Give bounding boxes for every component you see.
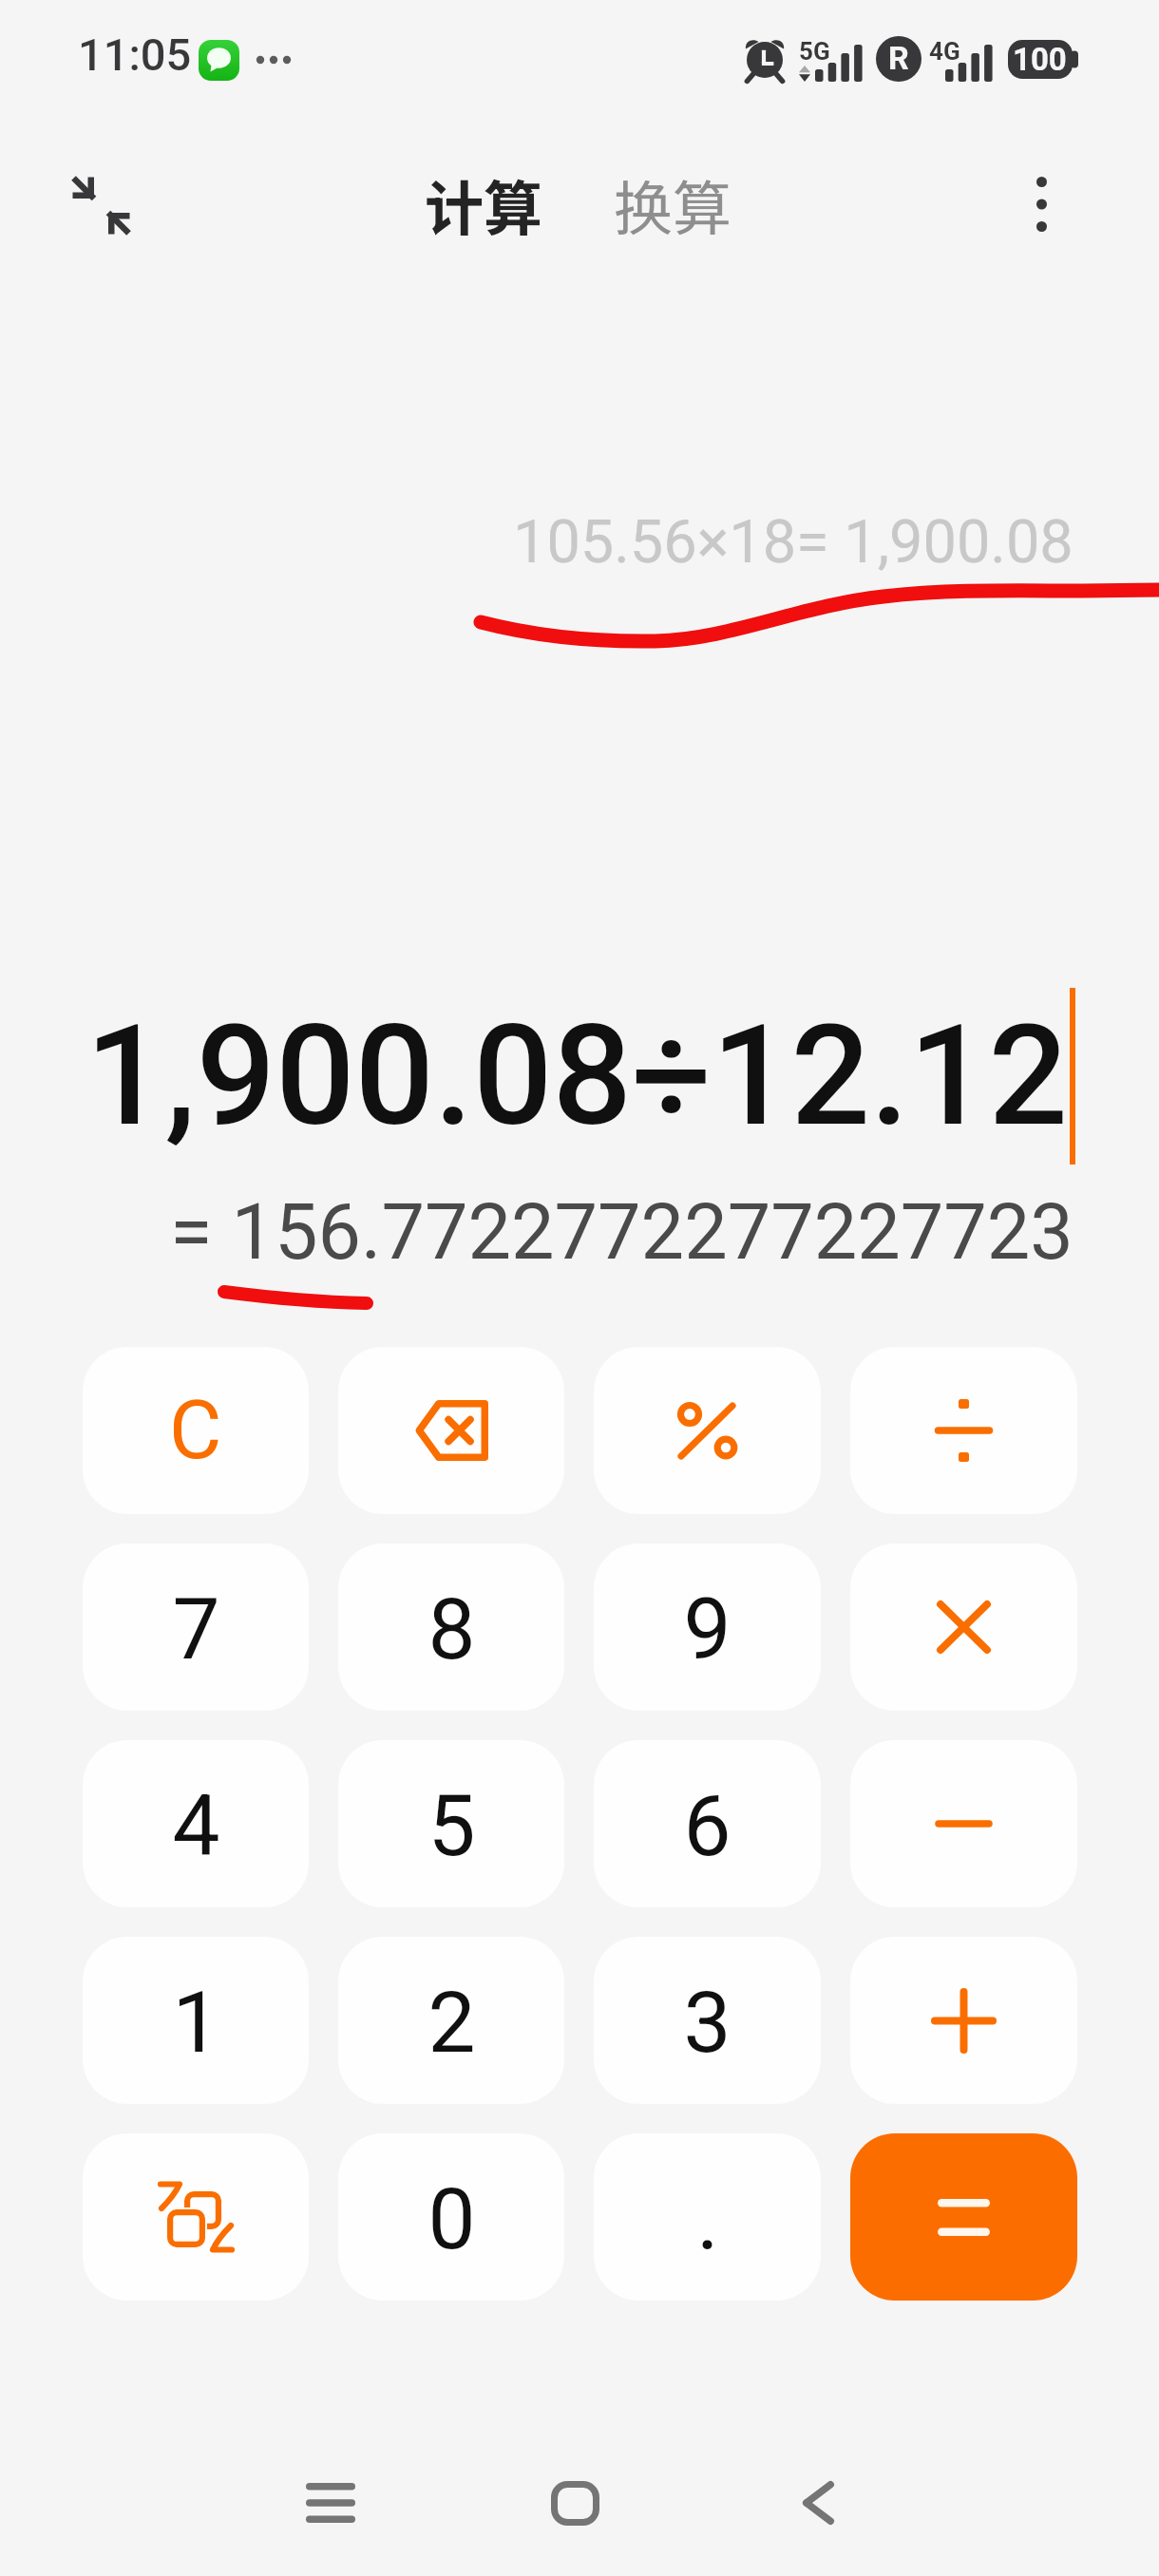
button[interactable]: 8 — [338, 1544, 564, 1711]
staticText: 8 — [427, 1580, 476, 1678]
staticText: 2 — [427, 1973, 476, 2072]
button[interactable]: 9 — [594, 1544, 821, 1711]
button[interactable]: Equals — [850, 2133, 1077, 2301]
button[interactable]: 1 — [83, 1937, 309, 2104]
staticText: 1 — [172, 1973, 220, 2072]
button[interactable]: Plus — [850, 1937, 1077, 2104]
button[interactable]: Multiply — [850, 1544, 1077, 1711]
staticText: 5G — [799, 37, 830, 66]
staticText: = 156.7722772277227723 — [170, 1187, 1073, 1269]
staticText: 105.56×18= 1,900.08 — [513, 507, 1073, 576]
staticText: 100 — [1013, 41, 1067, 78]
staticText: 4G — [929, 37, 960, 66]
button[interactable]: 计算 — [411, 144, 557, 264]
staticText: 11:05 — [78, 28, 192, 81]
button[interactable]: 4 — [83, 1740, 309, 1907]
button[interactable]: More options — [984, 147, 1098, 261]
staticText: 3 — [683, 1973, 731, 2072]
staticText: 计算 — [425, 161, 543, 247]
staticText: 7 — [172, 1580, 220, 1678]
button[interactable]: Percent — [594, 1347, 821, 1514]
button[interactable]: 0 — [338, 2133, 564, 2301]
button[interactable]: Back — [757, 2442, 879, 2564]
button[interactable]: Minus — [850, 1740, 1077, 1907]
button[interactable]: Divide — [850, 1347, 1077, 1514]
button[interactable]: 5 — [338, 1740, 564, 1907]
staticText: 换算 — [614, 161, 732, 247]
button[interactable]: 换算 — [600, 144, 746, 264]
button[interactable]: Decimal point — [594, 2133, 821, 2301]
staticText: . — [696, 2169, 719, 2268]
staticText: 5 — [427, 1776, 476, 1875]
button[interactable]: 2 — [338, 1937, 564, 2104]
button[interactable]: Recents — [270, 2442, 391, 2564]
button[interactable]: 3 — [594, 1937, 821, 2104]
staticText: 9 — [683, 1580, 731, 1678]
button[interactable]: 6 — [594, 1740, 821, 1907]
staticText: 6 — [683, 1776, 731, 1875]
button[interactable]: Collapse — [43, 147, 159, 263]
staticText: 1,900.08÷12.12 — [85, 994, 1068, 1158]
staticText: C — [169, 1383, 222, 1478]
staticText: R — [888, 39, 909, 77]
button[interactable]: History — [83, 2133, 309, 2301]
button[interactable]: 7 — [83, 1544, 309, 1711]
button[interactable]: Backspace — [338, 1347, 564, 1514]
staticText: 0 — [427, 2169, 476, 2268]
staticText: 4 — [172, 1776, 220, 1875]
button[interactable]: Home — [514, 2442, 636, 2564]
button[interactable]: Clear — [83, 1347, 309, 1514]
